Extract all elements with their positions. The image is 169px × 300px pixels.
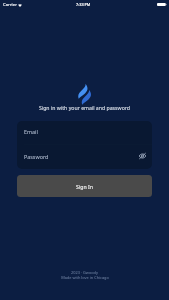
staticText: Email [24,128,38,135]
staticText: Sign in with your email and password [0,104,169,111]
staticText: Made with love in Chicago [61,275,109,280]
button[interactable]: Sign In [17,175,152,197]
staticText: 7:33 PM [76,2,91,7]
staticText: 2023 · Gwoody [71,270,98,275]
button[interactable]: Email [17,121,152,144]
button[interactable]: Password [17,145,152,169]
staticText: Sign In [76,183,93,190]
staticText: Carrier [3,2,17,8]
staticText: Password [24,153,49,160]
other: Show password [139,153,146,159]
